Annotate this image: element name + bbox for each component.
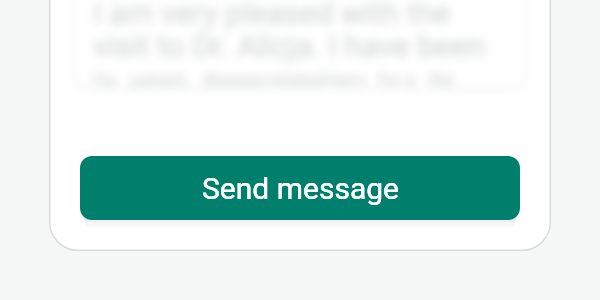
button[interactable]: Send message xyxy=(80,156,520,220)
staticText: visit to Dr. Alicja. I have been xyxy=(93,28,485,64)
staticText: I am very pleased with the xyxy=(93,0,451,31)
staticText: Send message xyxy=(202,171,399,206)
button[interactable]: Review text field xyxy=(73,0,527,90)
staticText: his patient, disease-related-hem for a t… xyxy=(93,69,454,90)
